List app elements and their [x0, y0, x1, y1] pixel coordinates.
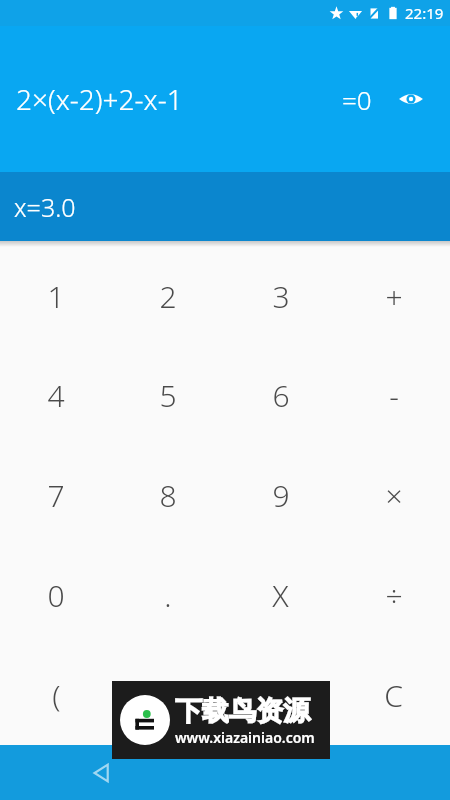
staticText: 3 [272, 276, 290, 317]
staticText: www.xiazainiao.com [175, 728, 315, 747]
staticText: 22:19 [405, 3, 444, 23]
staticText: . [164, 575, 172, 616]
button[interactable]: × [337, 445, 450, 545]
button[interactable]: 0 [0, 545, 112, 645]
staticText: 2×(x-2)+2-x-1 [16, 80, 183, 118]
staticText: + [385, 276, 403, 317]
button[interactable]: ( [0, 645, 112, 745]
staticText: ( [52, 675, 61, 716]
staticText: - [389, 375, 399, 416]
button[interactable]: 2 [112, 247, 224, 346]
button[interactable]: ÷ [337, 545, 450, 645]
staticText: ) [164, 675, 173, 716]
staticText: C [384, 675, 403, 716]
staticText: x=3.0 [14, 190, 76, 224]
staticText: 2 [159, 276, 177, 317]
staticText: 4 [47, 375, 65, 416]
button[interactable]: Toggle visibility [394, 82, 428, 116]
staticText: × [385, 475, 403, 516]
button[interactable]: 1 [0, 247, 112, 346]
button[interactable]: CE [224, 645, 337, 745]
button[interactable]: . [112, 545, 224, 645]
staticText: 1 [47, 276, 65, 317]
button[interactable]: 4 [0, 346, 112, 445]
staticText: 5 [159, 375, 177, 416]
staticText: 9 [272, 475, 290, 516]
button[interactable]: 6 [224, 346, 337, 445]
staticText: X [272, 575, 289, 616]
button[interactable]: 8 [112, 445, 224, 545]
staticText: CE [265, 678, 296, 713]
button[interactable]: 9 [224, 445, 337, 545]
staticText: 0 [47, 575, 65, 616]
staticText: ÷ [385, 575, 403, 616]
button[interactable]: + [337, 247, 450, 346]
button[interactable]: C [337, 645, 450, 745]
button[interactable]: 5 [112, 346, 224, 445]
staticText: 6 [272, 375, 290, 416]
button[interactable]: 3 [224, 247, 337, 346]
staticText: 7 [47, 475, 65, 516]
button[interactable]: 7 [0, 445, 112, 545]
button[interactable]: X [224, 545, 337, 645]
staticText: 8 [159, 475, 177, 516]
button[interactable]: ) [112, 645, 224, 745]
staticText: 下载鸟资源 [175, 694, 310, 728]
button[interactable]: Back [80, 751, 124, 795]
button[interactable]: - [337, 346, 450, 445]
staticText: =0 [342, 82, 372, 117]
